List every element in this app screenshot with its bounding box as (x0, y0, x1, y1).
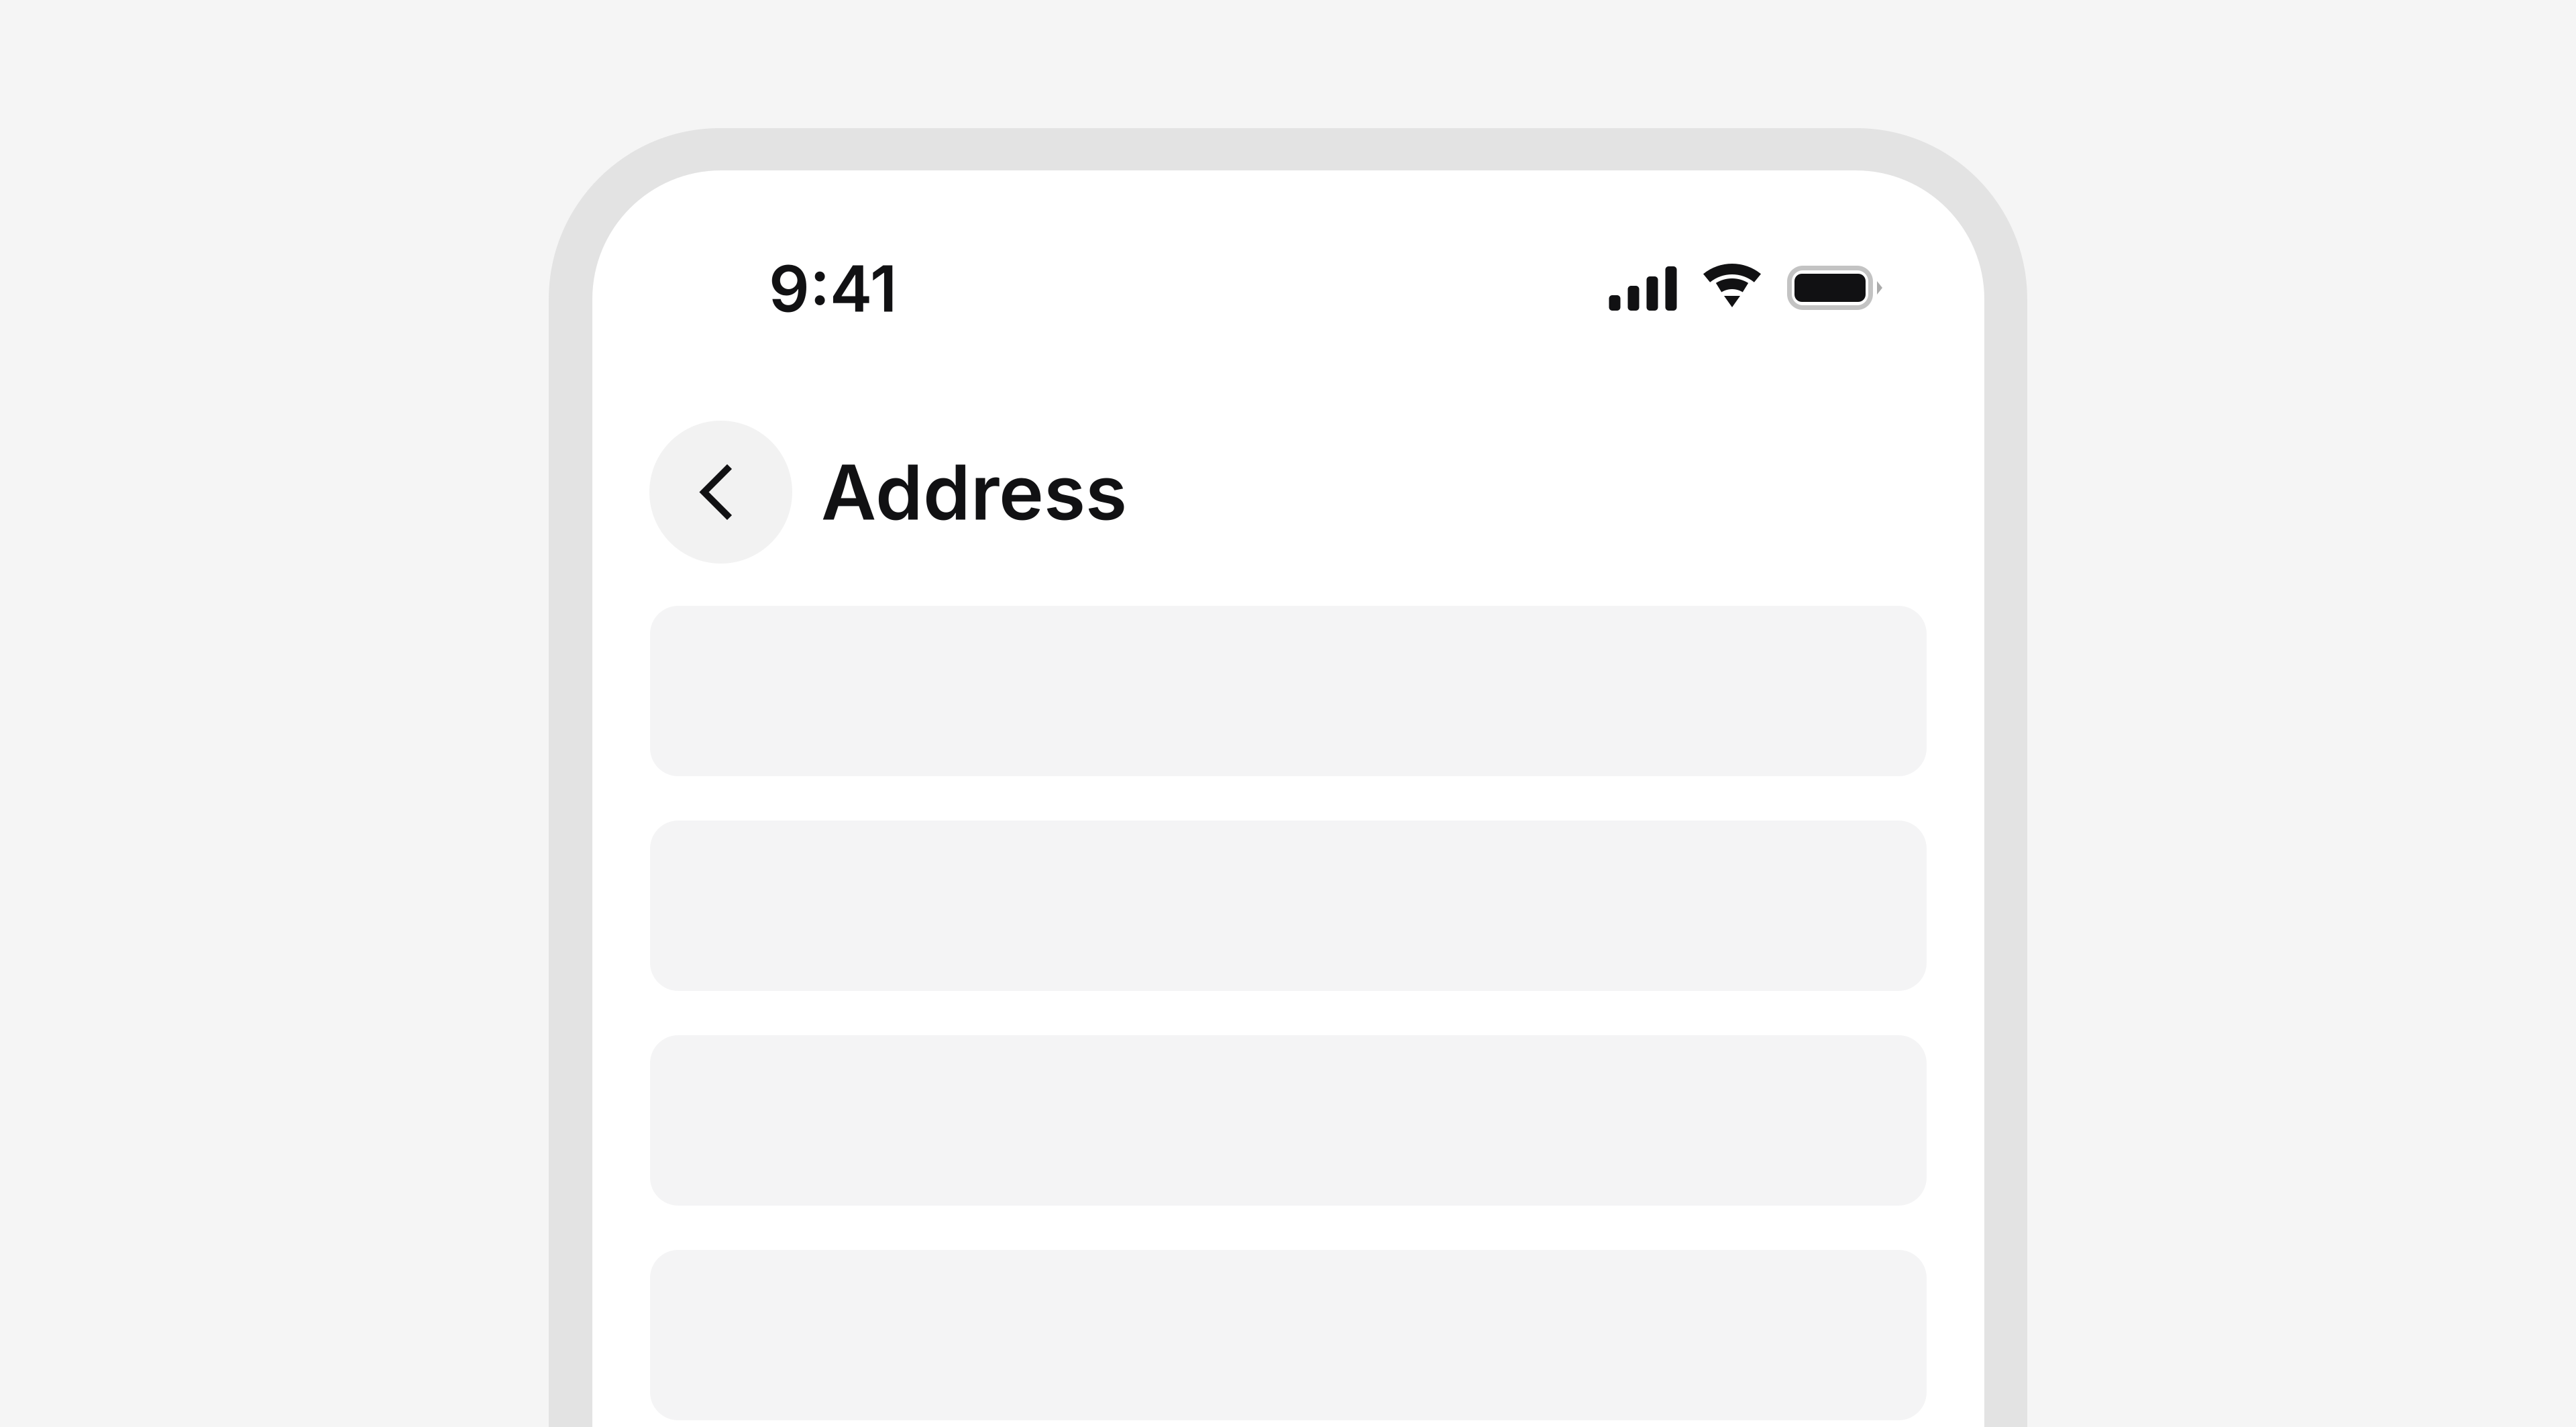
staticText: Address (821, 446, 1127, 538)
staticText: 9:41 (769, 250, 897, 327)
button[interactable]: Back (649, 421, 792, 564)
